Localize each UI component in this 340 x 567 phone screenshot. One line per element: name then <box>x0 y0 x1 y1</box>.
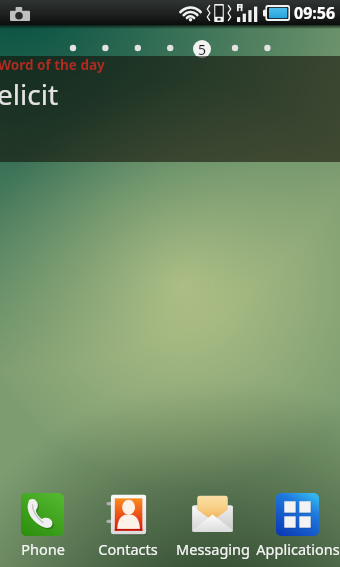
staticText: 09:56 <box>294 2 336 24</box>
staticText: Word of the day <box>0 56 105 74</box>
staticText: Contacts <box>98 539 158 559</box>
button[interactable]: Phone <box>0 485 85 567</box>
button[interactable]: Word of the day <box>0 56 340 162</box>
staticText: Phone <box>21 539 65 559</box>
staticText: elicit <box>0 75 59 113</box>
button[interactable]: Messaging <box>170 485 255 567</box>
button[interactable]: Contacts <box>85 485 170 567</box>
button[interactable]: 5 <box>193 40 211 58</box>
button[interactable]: Applications <box>255 485 340 567</box>
staticText: 5 <box>198 40 207 58</box>
staticText: Messaging <box>176 539 250 559</box>
other: Screenshot captured <box>10 7 30 21</box>
staticText: Applications <box>256 539 340 559</box>
